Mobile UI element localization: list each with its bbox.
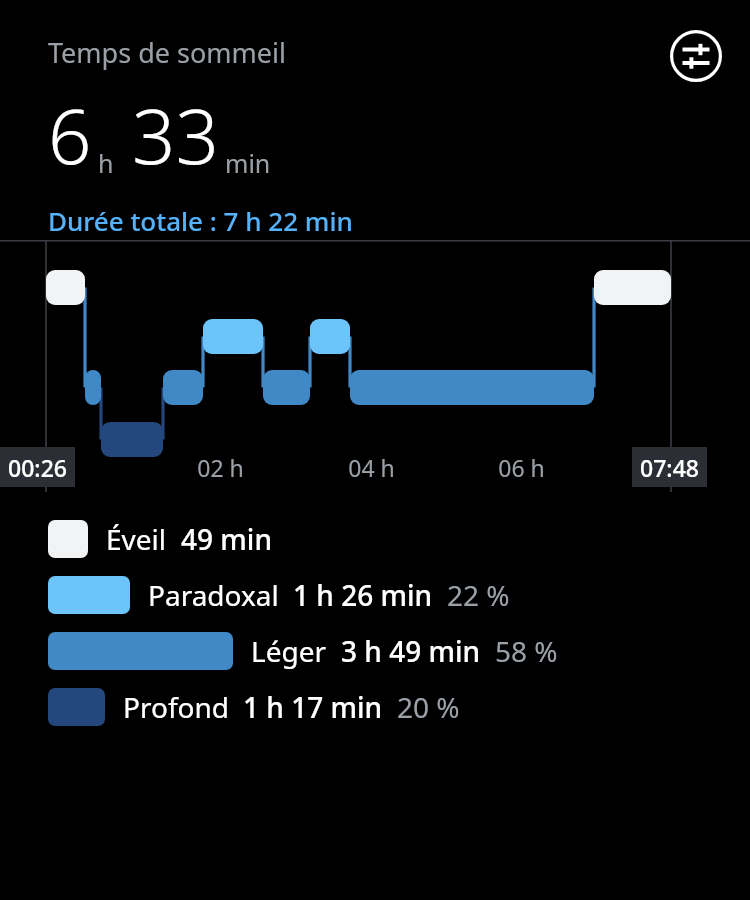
staticText: 1 h 26 min [293, 576, 433, 614]
staticText: Temps de sommeil [48, 34, 286, 71]
staticText: 1 h 17 min [243, 688, 383, 726]
button[interactable]: Paradoxal [0, 576, 750, 614]
staticText: h [98, 146, 114, 180]
staticText: 49 min [181, 520, 272, 558]
staticText: Léger [251, 632, 327, 670]
button[interactable]: Réglages [670, 30, 722, 82]
staticText: Éveil [106, 520, 167, 558]
button[interactable]: Profond [0, 688, 750, 726]
staticText: min [225, 146, 271, 180]
staticText: 22 % [447, 576, 510, 614]
button[interactable]: Léger [0, 632, 750, 670]
staticText: 04 h [348, 452, 395, 483]
staticText: 07:48 [640, 452, 699, 483]
staticText: 06 h [498, 452, 545, 483]
staticText: 02 h [197, 452, 244, 483]
staticText: 33 [132, 83, 219, 187]
staticText: 58 % [495, 632, 558, 670]
staticText: 6 [48, 83, 92, 187]
staticText: Durée totale : 7 h 22 min [48, 203, 353, 238]
staticText: Profond [123, 688, 229, 726]
staticText: 3 h 49 min [341, 632, 481, 670]
staticText: 20 % [397, 688, 460, 726]
staticText: 00:26 [8, 452, 67, 483]
staticText: Paradoxal [148, 576, 279, 614]
button[interactable]: Éveil [0, 520, 750, 558]
